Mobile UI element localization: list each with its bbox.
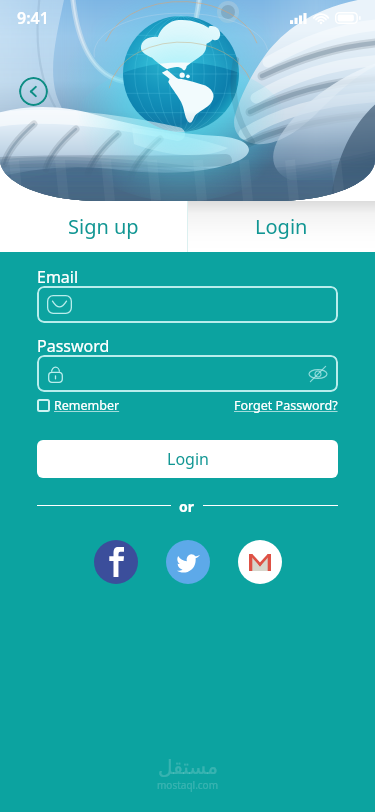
- staticText: 9:41: [17, 7, 49, 29]
- button[interactable]: Sign in with Google: [238, 540, 282, 584]
- button[interactable]: Login: [188, 201, 375, 252]
- button[interactable]: Sign in with Twitter: [166, 540, 210, 584]
- staticText: Remember: [54, 397, 120, 414]
- button[interactable]: Sign up: [0, 201, 187, 252]
- staticText: Password: [37, 335, 110, 357]
- staticText: Login: [167, 448, 209, 470]
- button[interactable]: [47, 286, 328, 323]
- staticText: mostaql.com: [157, 778, 219, 792]
- staticText: Email: [37, 266, 79, 288]
- button[interactable]: Sign in with Facebook: [94, 540, 138, 584]
- staticText: مستقل: [158, 755, 218, 778]
- staticText: Sign up: [68, 213, 139, 240]
- staticText: or: [179, 497, 195, 513]
- button[interactable]: Remember: [37, 397, 120, 414]
- button[interactable]: [47, 355, 328, 392]
- staticText: Login: [255, 213, 308, 240]
- button[interactable]: Forget Password?: [234, 397, 338, 414]
- button[interactable]: Back: [19, 77, 48, 106]
- button[interactable]: Login: [37, 440, 338, 478]
- staticText: Forget Password?: [234, 397, 338, 414]
